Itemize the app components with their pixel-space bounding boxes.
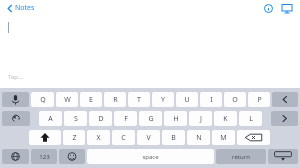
button[interactable]: R: [104, 92, 126, 107]
button[interactable]: F: [114, 111, 137, 126]
button[interactable]: E: [80, 92, 102, 107]
staticText: I: [210, 95, 213, 105]
staticText: P: [257, 95, 262, 105]
button[interactable]: Microphone: [2, 92, 29, 107]
button[interactable]: Next: [271, 111, 298, 126]
staticText: M: [220, 133, 227, 143]
staticText: K: [223, 114, 228, 124]
staticText: Q: [40, 95, 46, 105]
staticText: H: [173, 114, 179, 124]
button[interactable]: G: [139, 111, 162, 126]
button[interactable]: A: [39, 111, 62, 126]
button[interactable]: M: [212, 130, 235, 145]
button[interactable]: D: [89, 111, 112, 126]
button[interactable]: Notes: [5, 1, 37, 15]
button[interactable]: J: [189, 111, 212, 126]
button[interactable]: Hide keyboard: [268, 149, 298, 164]
button[interactable]: 123: [31, 149, 57, 164]
staticText: W: [64, 95, 71, 105]
button[interactable]: B: [162, 130, 185, 145]
button[interactable]: U: [176, 92, 198, 107]
button[interactable]: return: [216, 149, 266, 164]
button[interactable]: H: [164, 111, 187, 126]
button[interactable]: Shift: [29, 130, 61, 145]
button[interactable]: Previous: [272, 92, 298, 107]
button[interactable]: V: [137, 130, 160, 145]
button[interactable]: W: [56, 92, 78, 107]
button[interactable]: X: [87, 130, 110, 145]
button[interactable]: Info: [261, 1, 275, 15]
staticText: L: [249, 114, 253, 124]
staticText: 123: [39, 153, 50, 161]
staticText: Z: [72, 133, 77, 143]
button[interactable]: Q: [31, 92, 54, 107]
staticText: C: [121, 133, 126, 143]
button[interactable]: P: [248, 92, 270, 107]
button[interactable]: Emoji: [59, 149, 85, 164]
staticText: space: [142, 153, 159, 161]
staticText: B: [171, 133, 176, 143]
button[interactable]: New note: [280, 1, 294, 15]
button[interactable]: Z: [63, 130, 85, 145]
button[interactable]: S: [64, 111, 87, 126]
staticText: return: [232, 153, 250, 161]
staticText: E: [89, 95, 93, 105]
button[interactable]: L: [239, 111, 262, 126]
staticText: S: [74, 114, 78, 124]
button[interactable]: Change language: [2, 149, 29, 164]
staticText: O: [232, 95, 238, 105]
staticText: G: [148, 114, 154, 124]
button[interactable]: space: [87, 149, 214, 164]
staticText: V: [146, 133, 151, 143]
button[interactable]: Undo: [2, 111, 30, 126]
staticText: N: [196, 133, 202, 143]
staticText: D: [98, 114, 104, 124]
button[interactable]: K: [214, 111, 237, 126]
staticText: T: [137, 95, 141, 105]
button[interactable]: N: [187, 130, 210, 145]
staticText: Y: [161, 95, 165, 105]
button[interactable]: T: [128, 92, 150, 107]
staticText: J: [200, 114, 202, 124]
staticText: Notes: [15, 3, 35, 13]
staticText: R: [113, 95, 118, 105]
staticText: Tap...: [8, 73, 23, 81]
button[interactable]: Backspace: [237, 130, 270, 145]
staticText: U: [184, 95, 190, 105]
button[interactable]: C: [112, 130, 135, 145]
button[interactable]: Y: [152, 92, 174, 107]
button[interactable]: O: [224, 92, 246, 107]
staticText: F: [124, 114, 128, 124]
staticText: A: [48, 114, 53, 124]
staticText: X: [96, 133, 101, 143]
button[interactable]: I: [200, 92, 222, 107]
